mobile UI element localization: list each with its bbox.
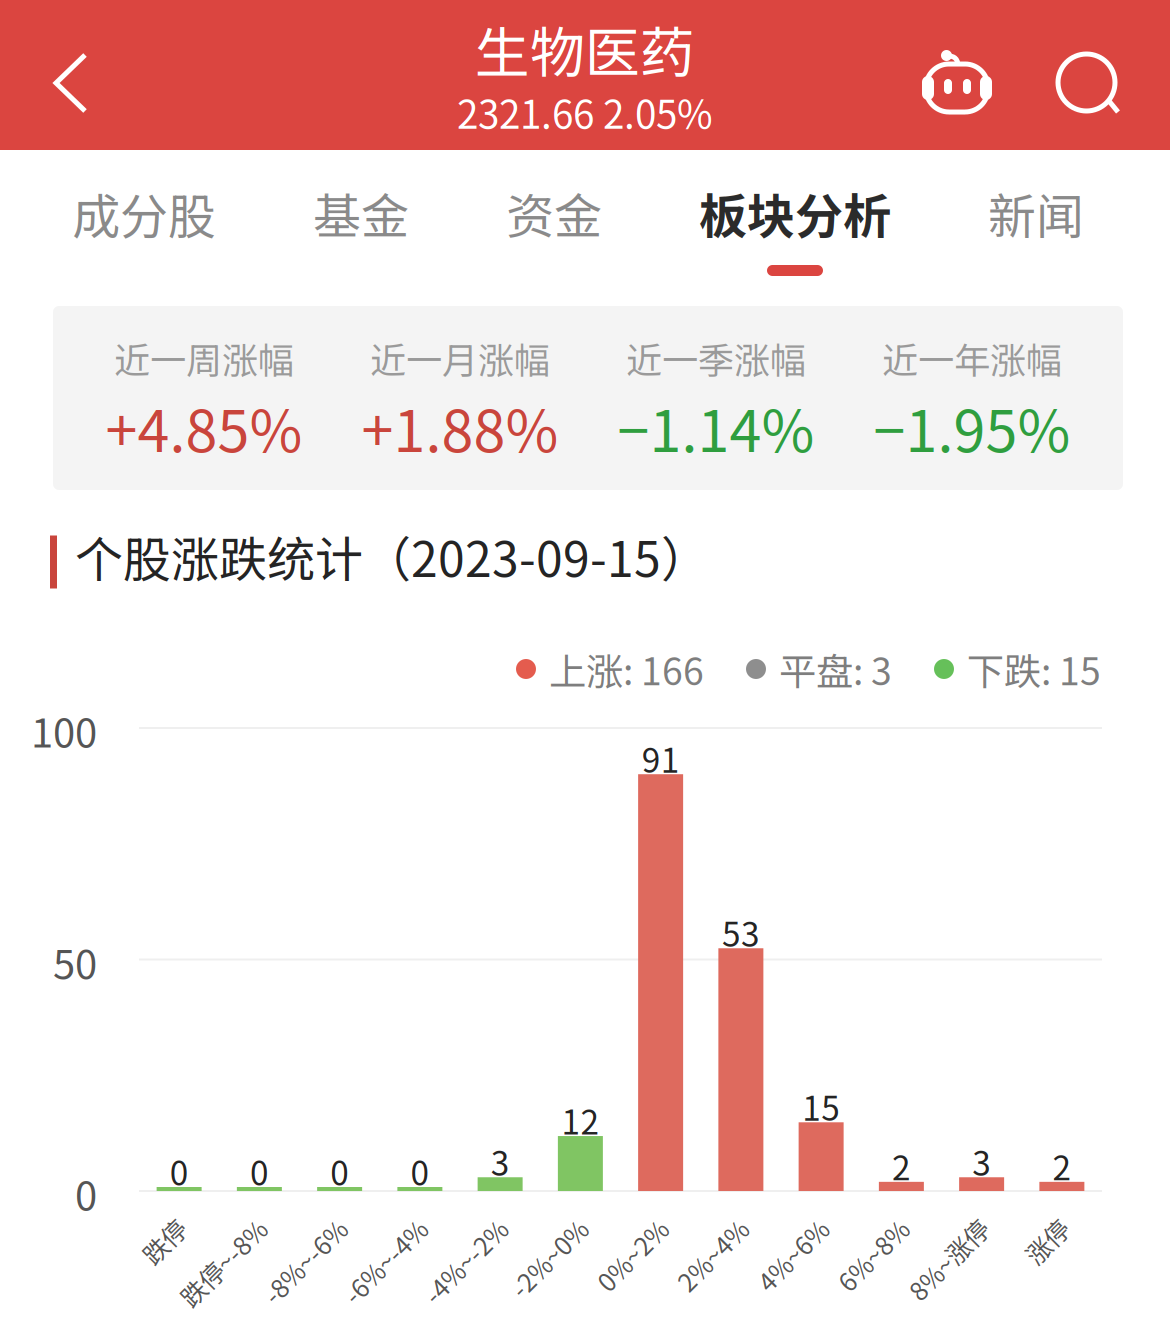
- staticText: 0%~2%: [565, 1210, 653, 1246]
- staticText: 0: [250, 1147, 269, 1195]
- staticText: 成分股: [72, 178, 216, 248]
- staticText: 15: [802, 1082, 840, 1130]
- staticText: +1.88%: [361, 385, 558, 468]
- staticText: 6%~8%: [805, 1210, 893, 1246]
- staticText: 跌停~-8%: [141, 1210, 251, 1246]
- staticText: 8%~涨停: [873, 1210, 974, 1246]
- button[interactable]: 成分股: [72, 150, 216, 295]
- button[interactable]: 资金: [506, 150, 602, 295]
- staticText: 资金: [506, 178, 602, 248]
- button[interactable]: 板块分析: [699, 150, 891, 295]
- staticText: −1.95%: [873, 385, 1070, 468]
- staticText: 2: [1052, 1142, 1071, 1190]
- staticText: 91: [642, 734, 680, 782]
- staticText: 53: [722, 908, 760, 956]
- button[interactable]: 基金: [313, 150, 409, 295]
- staticText: 0: [170, 1147, 189, 1195]
- staticText: 2: [892, 1142, 911, 1190]
- staticText: −1.14%: [617, 385, 814, 468]
- staticText: 2%~4%: [645, 1210, 733, 1246]
- staticText: 平盘: 3: [779, 642, 892, 696]
- staticText: 3: [972, 1137, 991, 1185]
- staticText: -4%~-2%: [386, 1210, 492, 1246]
- button[interactable]: Search: [1032, 0, 1146, 150]
- staticText: 近一月涨幅: [370, 332, 550, 384]
- staticText: 跌停: [121, 1210, 171, 1246]
- staticText: 基金: [313, 178, 409, 248]
- staticText: 4%~6%: [725, 1210, 813, 1246]
- button[interactable]: 新闻: [988, 150, 1084, 295]
- staticText: 100: [31, 701, 97, 759]
- staticText: -6%~-4%: [306, 1210, 412, 1246]
- staticText: 板块分析: [699, 178, 891, 248]
- staticText: 近一年涨幅: [882, 332, 1062, 384]
- button[interactable]: AI assistant: [900, 0, 1014, 150]
- staticText: 3: [491, 1137, 510, 1185]
- staticText: 新闻: [988, 178, 1084, 248]
- staticText: 0: [75, 1164, 97, 1222]
- staticText: 生物医药: [475, 9, 695, 89]
- staticText: 近一周涨幅: [114, 332, 294, 384]
- staticText: -8%~-6%: [226, 1210, 332, 1246]
- staticText: +4.85%: [105, 385, 302, 468]
- staticText: 0: [330, 1147, 349, 1195]
- staticText: 0: [410, 1147, 429, 1195]
- staticText: -2%~0%: [475, 1210, 572, 1246]
- staticText: 下跌: 15: [967, 642, 1101, 696]
- staticText: 50: [53, 932, 97, 990]
- staticText: 涨停: [1004, 1210, 1054, 1246]
- staticText: 12: [561, 1096, 599, 1144]
- button[interactable]: Back: [0, 0, 140, 150]
- staticText: 上涨: 166: [549, 642, 704, 696]
- staticText: 近一季涨幅: [626, 332, 806, 384]
- staticText: 个股涨跌统计（2023-09-15）: [75, 521, 709, 591]
- staticText: 2321.66 2.05%: [457, 84, 713, 140]
